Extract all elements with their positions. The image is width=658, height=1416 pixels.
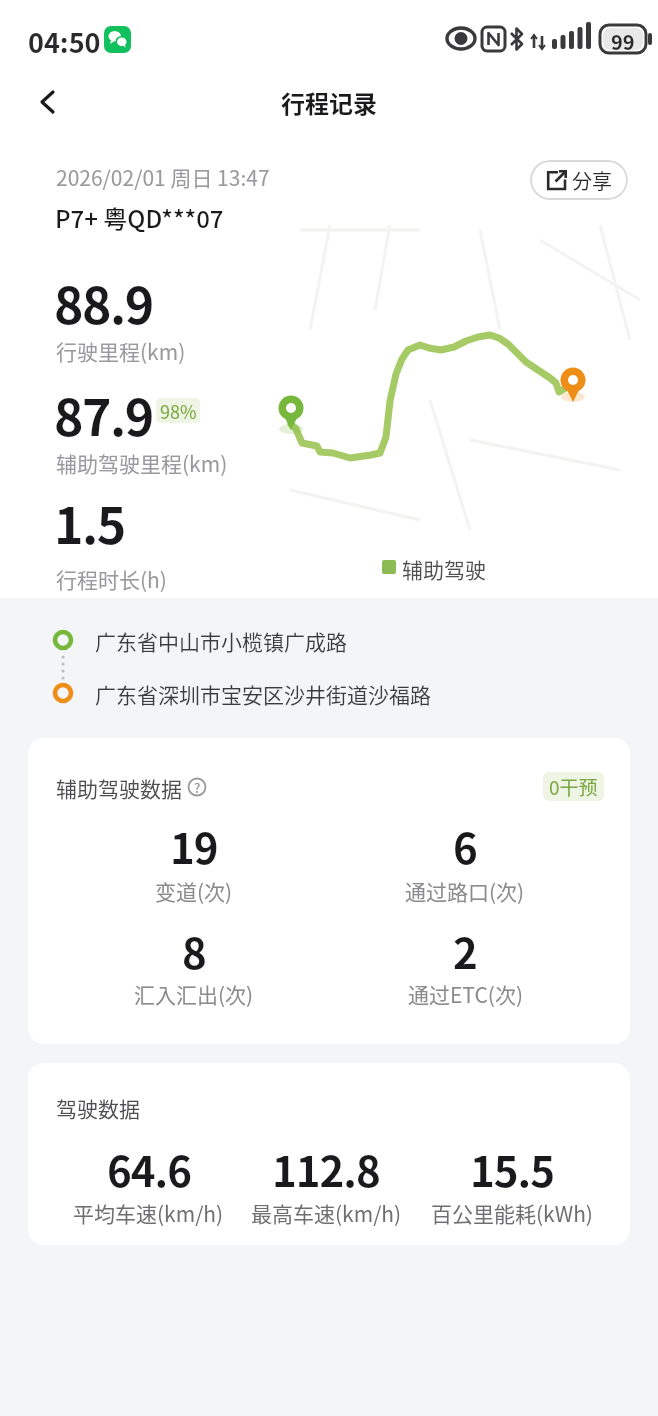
staticText: 87.9	[54, 378, 153, 450]
staticText: 8	[182, 920, 206, 976]
staticText: 1.5	[54, 486, 125, 558]
staticText: 2	[453, 920, 477, 976]
staticText: 15.5	[470, 1138, 554, 1194]
staticText: 行程时长(h)	[56, 564, 167, 592]
staticText: 04:50	[28, 22, 101, 58]
staticText: 平均车速(km/h)	[73, 1198, 224, 1226]
button[interactable]	[28, 1063, 630, 1245]
staticText: 64.6	[107, 1138, 191, 1194]
staticText: 2026/02/01 周日 13:47	[56, 162, 270, 190]
staticText: 广东省中山市小榄镇广成路	[95, 626, 347, 654]
staticText: 通过路口(次)	[405, 876, 525, 904]
staticText: 行驶里程(km)	[56, 336, 186, 364]
staticText: 辅助驾驶里程(km)	[56, 448, 228, 476]
staticText: 驾驶数据	[56, 1093, 140, 1121]
staticText: 88.9	[54, 266, 153, 338]
button[interactable]: 分享	[530, 160, 628, 200]
staticText: 辅助驾驶数据	[56, 773, 182, 801]
staticText: 112.8	[272, 1138, 380, 1194]
staticText: 行程记录	[281, 85, 377, 120]
button[interactable]	[28, 738, 630, 1044]
staticText: 19	[170, 815, 218, 871]
staticText: 分享	[572, 166, 612, 195]
staticText: 百公里能耗(kWh)	[431, 1198, 593, 1226]
staticText: 广东省深圳市宝安区沙井街道沙福路	[95, 679, 431, 707]
staticText: P7+ 粤QD***07	[55, 200, 224, 232]
staticText: 0干预	[549, 773, 598, 801]
staticText: 6	[453, 815, 477, 871]
staticText: 98%	[160, 398, 197, 423]
staticText: 汇入汇出(次)	[134, 979, 254, 1007]
staticText: 最高车速(km/h)	[251, 1198, 402, 1226]
staticText: ?	[194, 778, 201, 797]
staticText: 99	[611, 27, 635, 51]
button[interactable]	[28, 84, 68, 124]
staticText: 变道(次)	[155, 876, 233, 904]
staticText: 辅助驾驶	[402, 554, 486, 582]
staticText: 通过ETC(次)	[408, 979, 523, 1007]
